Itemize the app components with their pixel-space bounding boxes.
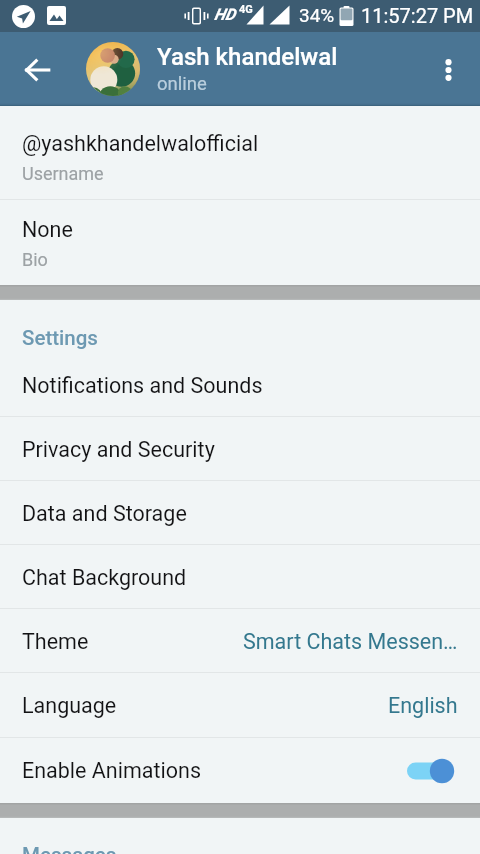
other: Signal strength 2: [269, 5, 290, 25]
staticText: Language: [22, 693, 117, 718]
staticText: Yash khandelwal: [157, 43, 338, 71]
staticText: Privacy and Security: [22, 437, 215, 462]
button[interactable]: More options: [424, 45, 472, 93]
staticText: 34%: [299, 4, 335, 26]
staticText: 11:57:27 PM: [361, 4, 474, 27]
other: Battery 34 percent: [339, 6, 354, 27]
staticText: Theme: [22, 629, 89, 654]
staticText: Settings: [22, 326, 98, 350]
staticText: Bio: [22, 249, 48, 270]
other: Vibrate mode: [184, 7, 209, 25]
staticText: Smart Chats Messen…: [243, 629, 458, 654]
other: Screenshot: [47, 6, 66, 25]
button[interactable]: Notifications and Sounds: [0, 353, 480, 417]
staticText: 4G: [239, 3, 253, 16]
button[interactable]: Theme: [0, 609, 480, 673]
other: Telegram notification: [12, 5, 35, 28]
staticText: Username: [22, 163, 104, 184]
staticText: @yashkhandelwalofficial: [22, 131, 259, 156]
button[interactable]: None: [0, 200, 480, 285]
button[interactable]: Language: [0, 673, 480, 738]
staticText: Enable Animations: [22, 758, 201, 783]
staticText: Chat Background: [22, 565, 187, 590]
staticText: None: [22, 217, 73, 242]
button[interactable]: Enable Animations toggle: [406, 756, 458, 786]
button[interactable]: Enable Animations: [0, 738, 480, 803]
staticText: online: [157, 73, 207, 95]
staticText: Data and Storage: [22, 501, 187, 526]
staticText: English: [388, 693, 458, 718]
staticText: HD: [214, 5, 236, 24]
button[interactable]: Chat Background: [0, 545, 480, 609]
other: Signal strength: [246, 5, 264, 25]
staticText: Messages: [22, 843, 117, 854]
button[interactable]: Profile photo: [86, 42, 140, 96]
button[interactable]: @yashkhandelwalofficial: [0, 106, 480, 200]
button[interactable]: Privacy and Security: [0, 417, 480, 481]
button[interactable]: Back: [13, 45, 61, 93]
staticText: Notifications and Sounds: [22, 373, 263, 398]
button[interactable]: Data and Storage: [0, 481, 480, 545]
